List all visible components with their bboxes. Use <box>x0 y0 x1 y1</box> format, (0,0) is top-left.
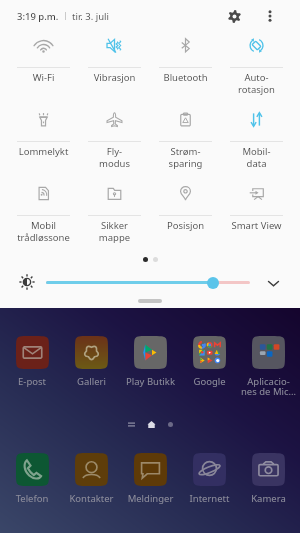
staticText: Strøm- sparing <box>150 145 221 169</box>
staticText: Auto- rotasjon <box>221 71 292 95</box>
button[interactable]: Google <box>180 336 239 388</box>
button[interactable]: Expand quick settings <box>263 273 283 293</box>
staticText: Telefon <box>2 492 62 505</box>
staticText: 3:19 p.m. <box>17 10 59 23</box>
staticText: Mobil- data <box>221 145 292 169</box>
staticText: Vibrasjon <box>79 71 150 84</box>
button[interactable]: Play Butikk <box>121 336 180 388</box>
staticText: Play Butikk <box>121 375 180 388</box>
button[interactable]: Mobil- data <box>221 113 292 187</box>
staticText: Kontakter <box>62 492 121 505</box>
staticText: Lommelykt <box>8 145 79 158</box>
button[interactable]: Aplicacio- nes de Mic… <box>239 336 298 398</box>
staticText: Fly- modus <box>79 145 150 169</box>
button[interactable]: Posisjon <box>150 187 221 261</box>
button[interactable]: Galleri <box>62 336 121 388</box>
button[interactable]: Sikker mappe <box>79 187 150 261</box>
staticText: Smart View <box>221 219 292 232</box>
staticText: Meldinger <box>121 492 180 505</box>
staticText: Google <box>180 375 239 388</box>
staticText: Wi-Fi <box>8 71 79 84</box>
button[interactable]: More options <box>260 6 280 26</box>
staticText: Aplicacio- nes de Mic… <box>239 375 298 398</box>
button[interactable]: Auto- rotasjon <box>221 39 292 113</box>
staticText: Mobil trådløssone <box>8 219 79 243</box>
button[interactable]: Settings <box>222 4 246 28</box>
staticText: Sikker mappe <box>79 219 150 243</box>
staticText: E-post <box>2 375 62 388</box>
button[interactable]: Wi-Fi <box>8 39 79 113</box>
staticText: Internett <box>180 492 239 505</box>
button[interactable]: Internett <box>180 453 239 505</box>
button[interactable]: Kontakter <box>62 453 121 505</box>
staticText: Bluetooth <box>150 71 221 84</box>
button[interactable]: Lommelykt <box>8 113 79 187</box>
button[interactable]: Bluetooth <box>150 39 221 113</box>
staticText: Kamera <box>239 492 298 505</box>
button[interactable]: Strøm- sparing <box>150 113 221 187</box>
button[interactable]: Fly- modus <box>79 113 150 187</box>
button[interactable]: Mobil trådløssone <box>8 187 79 261</box>
button[interactable]: Vibrasjon <box>79 39 150 113</box>
button[interactable]: Telefon <box>2 453 62 505</box>
button[interactable]: Meldinger <box>121 453 180 505</box>
staticText: Posisjon <box>150 219 221 232</box>
button[interactable]: E-post <box>2 336 62 388</box>
button[interactable]: Kamera <box>239 453 298 505</box>
button[interactable]: Smart View <box>221 187 292 261</box>
staticText: tir. 3. juli <box>72 10 109 23</box>
staticText: Galleri <box>62 375 121 388</box>
